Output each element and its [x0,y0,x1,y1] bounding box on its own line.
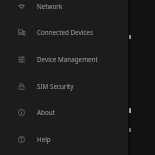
staticText: About [37,108,55,117]
staticText: Help [37,135,51,144]
staticText: Device Management [37,55,98,64]
staticText: Connected Devices [37,28,93,37]
button[interactable]: SIM Security [0,73,128,100]
button[interactable]: Connected Devices [0,19,128,46]
button[interactable]: About [0,99,128,126]
button[interactable]: Device Management [0,46,128,73]
button[interactable]: Network [0,0,128,20]
staticText: Network [37,2,63,11]
button[interactable]: Help [0,126,128,153]
staticText: SIM Security [37,82,74,91]
